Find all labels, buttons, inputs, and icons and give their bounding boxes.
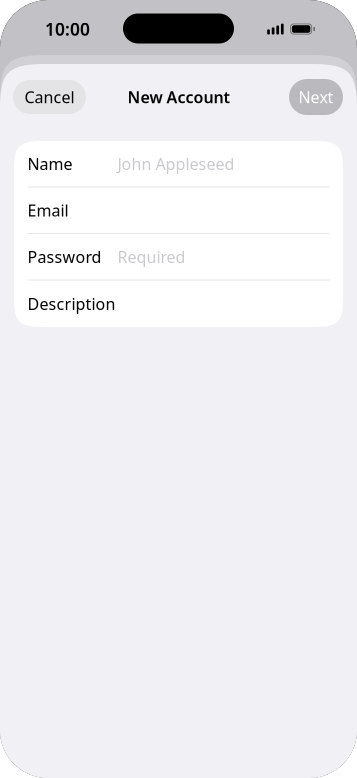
button[interactable]: Password — [14, 234, 343, 279]
staticText: Required — [117, 246, 185, 267]
button[interactable]: Cancel — [13, 80, 86, 114]
button[interactable]: Next — [289, 79, 343, 115]
button[interactable]: Name — [14, 141, 343, 186]
button[interactable]: Email — [14, 187, 343, 233]
staticText: Cancel — [24, 86, 74, 108]
staticText: John Appleseed — [117, 153, 234, 174]
staticText: Name — [27, 153, 72, 174]
staticText: Description — [27, 293, 115, 314]
staticText: New Account — [127, 86, 229, 108]
staticText: Next — [298, 86, 333, 108]
staticText: Email — [27, 200, 68, 221]
staticText: 10:00 — [45, 17, 90, 40]
button[interactable]: Description — [14, 280, 343, 327]
staticText: Password — [27, 246, 101, 267]
